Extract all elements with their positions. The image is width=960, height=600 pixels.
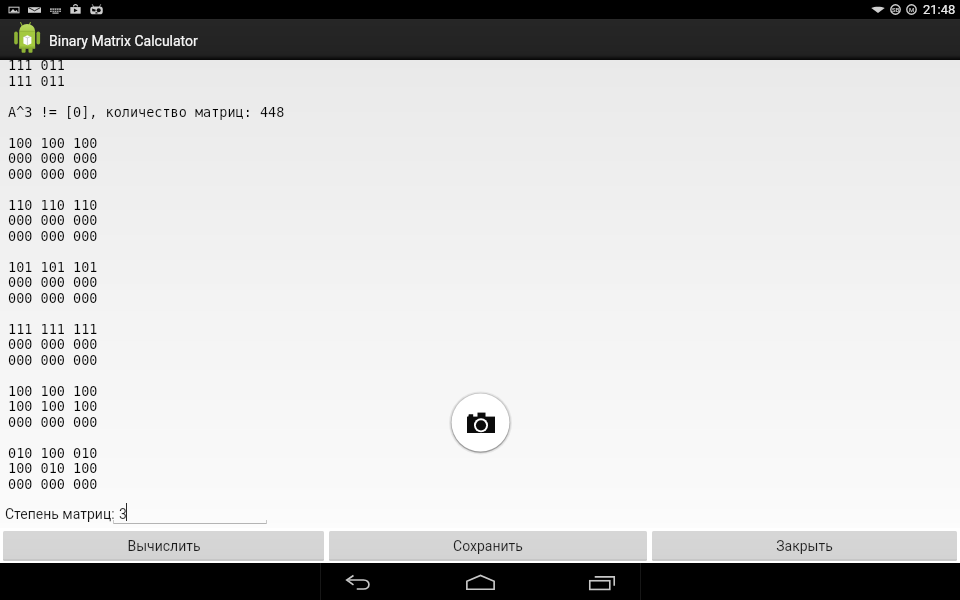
staticText: 100 010 100	[8, 460, 98, 476]
staticText: 100 100 100	[8, 398, 98, 414]
staticText: Степень матриц:	[5, 506, 115, 522]
staticText: Сохранить	[453, 538, 523, 554]
staticText: 000 000 000	[8, 166, 98, 182]
staticText: 000 000 000	[8, 290, 98, 306]
staticText: 101 101 101	[8, 259, 98, 275]
button[interactable]: Recent apps	[556, 563, 648, 600]
button[interactable]: Home	[434, 563, 526, 600]
staticText: 21:48	[923, 2, 956, 17]
staticText: 111 011	[8, 60, 65, 73]
staticText: 000 000 000	[8, 212, 98, 228]
staticText: 000 000 000	[8, 274, 98, 290]
staticText: 100 100 100	[8, 135, 98, 151]
staticText: 000 000 000	[8, 352, 98, 368]
staticText: Вычислить	[127, 538, 201, 554]
staticText: M	[909, 6, 915, 13]
button[interactable]: 3	[113, 503, 267, 524]
staticText: 110 110 110	[8, 197, 98, 213]
staticText: 000 000 000	[8, 476, 98, 492]
button[interactable]: Вычислить	[3, 531, 324, 561]
staticText: 111 011	[8, 73, 65, 89]
button[interactable]: Take photo	[445, 387, 516, 458]
staticText: Binary Matrix Calculator	[49, 33, 198, 49]
staticText: 3	[119, 506, 127, 522]
staticText: 000 000 000	[8, 414, 98, 430]
staticText: 111 111 111	[8, 321, 98, 337]
staticText: 010 100 010	[8, 445, 98, 461]
button[interactable]: Закрыть	[652, 531, 957, 561]
button[interactable]: Сохранить	[329, 531, 647, 561]
staticText: SB	[892, 6, 900, 13]
staticText: 000 000 000	[8, 228, 98, 244]
staticText: A^3 != [0], количество матриц: 448	[8, 104, 285, 120]
staticText: Закрыть	[776, 538, 833, 554]
staticText: 000 000 000	[8, 150, 98, 166]
button[interactable]: Back	[312, 563, 404, 600]
staticText: 000 000 000	[8, 336, 98, 352]
staticText: 100 100 100	[8, 383, 98, 399]
